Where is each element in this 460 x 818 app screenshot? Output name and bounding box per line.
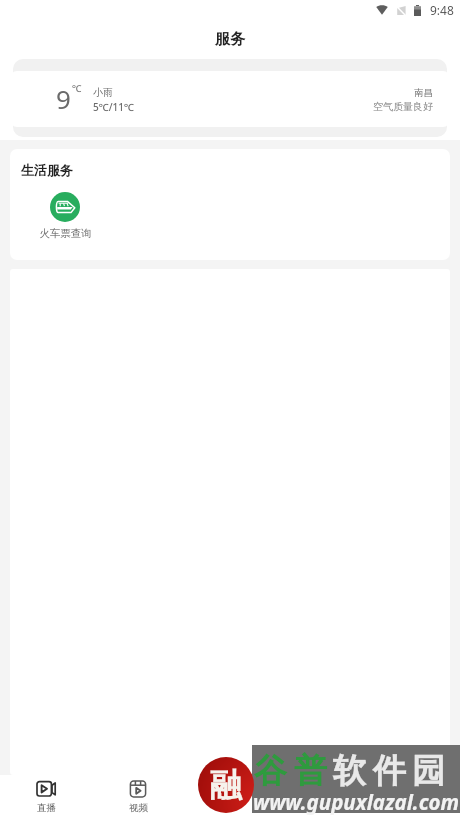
button[interactable]: 视频 [92, 775, 184, 818]
staticText: 直播 [37, 802, 56, 814]
staticText: 小雨 [93, 86, 113, 99]
staticText: 空气质量良好 [373, 100, 433, 113]
staticText: 9:48 [430, 2, 454, 18]
staticText: 南昌 [414, 87, 433, 99]
staticText: 视频 [129, 802, 148, 814]
button[interactable] [276, 775, 368, 818]
staticText: 9 [56, 81, 71, 116]
staticText: 件 [373, 750, 406, 792]
other: 视频 [128, 779, 148, 799]
staticText: 5℃/11℃ [93, 100, 134, 114]
staticText: 生活服务 [21, 162, 73, 178]
other: 直播 [36, 779, 56, 799]
staticText: www.gupuxlazal.com [253, 788, 460, 816]
staticText: 普 [294, 750, 327, 792]
staticText: 谷 [254, 750, 287, 792]
button[interactable]: 9 [10, 71, 450, 127]
button[interactable] [184, 775, 276, 818]
staticText: 融 [210, 765, 242, 805]
button[interactable]: 直播 [0, 775, 92, 818]
staticText: 软 [333, 750, 366, 792]
button[interactable]: 火车票查询 [30, 192, 100, 240]
staticText: 园 [412, 750, 445, 792]
staticText: ℃ [72, 82, 82, 95]
staticText: 服务 [215, 30, 245, 49]
button[interactable] [368, 775, 460, 818]
staticText: 火车票查询 [39, 227, 92, 240]
